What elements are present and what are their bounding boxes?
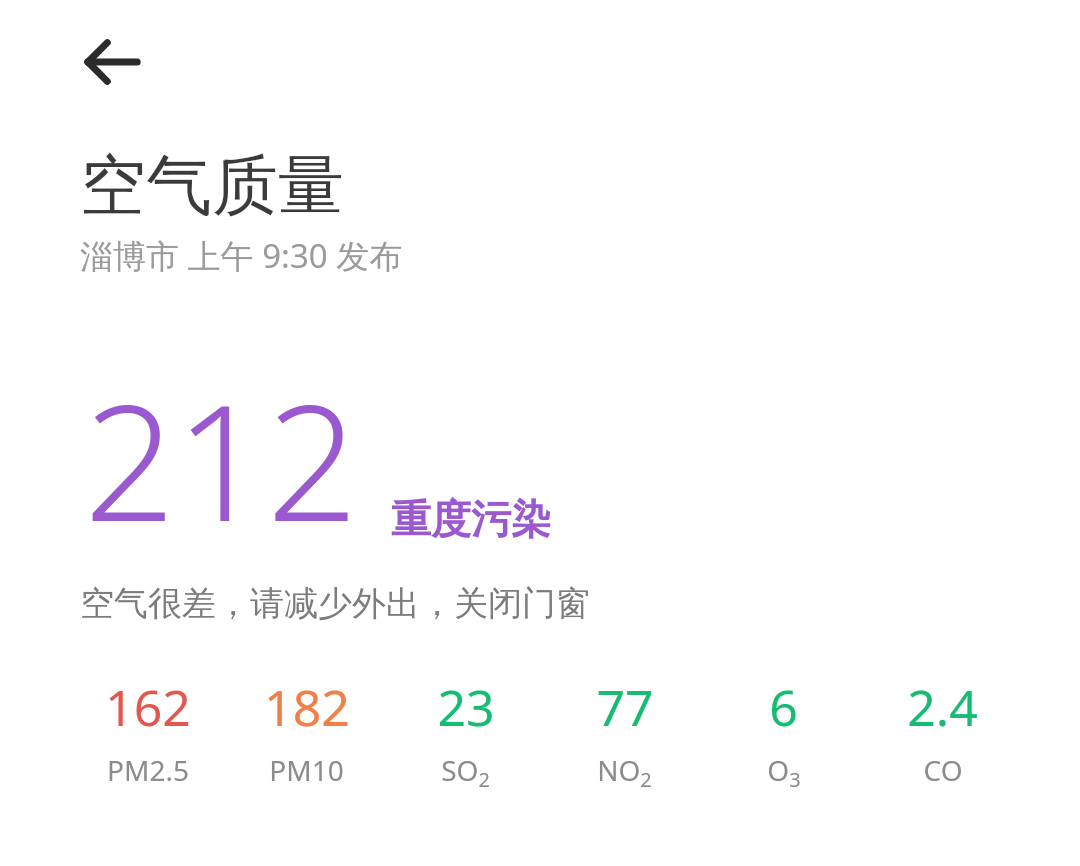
staticText: PM10 [269,751,344,789]
staticText: 182 [264,673,350,741]
button[interactable]: 77 [545,673,704,793]
staticText: 空气质量 [80,144,344,227]
button[interactable]: 182 [227,673,386,789]
button[interactable]: Back [58,18,146,106]
staticText: O3 [767,751,801,793]
button[interactable]: 162 [68,673,227,789]
staticText: 23 [437,673,495,741]
staticText: 淄博市 上午 9:30 发布 [80,233,403,278]
button[interactable]: 2.4 [863,673,1022,789]
staticText: NO2 [597,751,652,793]
staticText: 重度污染 [391,494,551,544]
staticText: 162 [105,673,191,741]
staticText: CO [923,751,963,789]
staticText: PM2.5 [107,751,189,789]
staticText: 6 [769,673,798,741]
staticText: SO2 [441,751,490,793]
button[interactable]: 6 [704,673,863,793]
staticText: 212 [84,350,359,568]
button[interactable]: 23 [386,673,545,793]
staticText: 2.4 [907,673,978,741]
staticText: 77 [596,673,654,741]
staticText: 空气很差，请减少外出，关闭门窗 [80,582,590,625]
